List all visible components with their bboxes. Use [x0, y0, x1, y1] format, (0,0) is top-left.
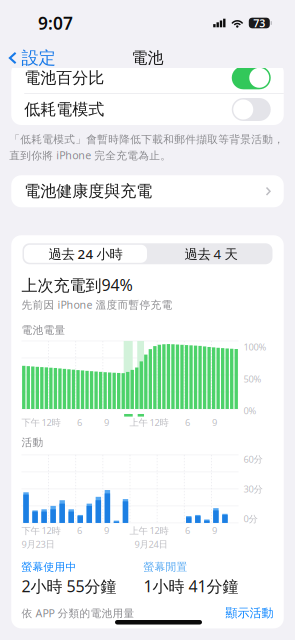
- staticText: 6: [77, 416, 82, 428]
- staticText: 0分: [243, 512, 257, 525]
- button[interactable]: 過去 4 天: [151, 245, 271, 263]
- staticText: 顯示活動: [225, 606, 273, 620]
- button[interactable]: 過去 24 小時: [24, 245, 147, 263]
- staticText: 電池電量: [21, 324, 65, 337]
- staticText: 9: [104, 416, 109, 428]
- staticText: 電池百分比: [24, 68, 104, 88]
- staticText: 9: [212, 416, 217, 428]
- staticText: 2小時 55分鐘: [21, 575, 116, 597]
- staticText: 9月24日: [134, 538, 167, 550]
- staticText: 活動: [21, 436, 43, 449]
- staticText: 先前因 iPhone 溫度而暫停充電: [21, 297, 172, 312]
- staticText: 9:07: [38, 11, 73, 34]
- staticText: 1小時 41分鐘: [143, 575, 238, 597]
- staticText: 電池: [131, 48, 163, 68]
- staticText: 50%: [243, 373, 261, 385]
- staticText: 設定: [21, 47, 55, 69]
- button[interactable]: 電池百分比: [11, 62, 284, 93]
- staticText: 上午 12時: [129, 416, 168, 428]
- button[interactable]: 設定: [0, 45, 64, 71]
- staticText: 9月23日: [21, 538, 54, 550]
- staticText: 60分: [243, 453, 262, 465]
- staticText: 6: [185, 416, 190, 428]
- staticText: 電池健康度與充電: [24, 181, 152, 201]
- staticText: 0%: [243, 404, 256, 417]
- staticText: 過去 4 天: [184, 245, 237, 263]
- staticText: 6: [185, 524, 190, 537]
- staticText: 100%: [243, 341, 266, 353]
- staticText: 下午 12時: [21, 416, 60, 428]
- staticText: 下午 12時: [21, 524, 60, 537]
- staticText: 低耗電模式: [24, 100, 104, 119]
- staticText: 過去 24 小時: [48, 245, 122, 263]
- staticText: 73: [253, 16, 265, 30]
- staticText: 9: [212, 524, 217, 537]
- staticText: 30分: [243, 483, 262, 495]
- staticText: 6: [77, 524, 82, 537]
- staticText: 螢幕使用中: [21, 560, 76, 573]
- staticText: 「低耗電模式」會暫時降低下載和郵件擷取等背景活動，: [9, 133, 284, 146]
- staticText: 上次充電到94%: [21, 274, 132, 295]
- staticText: 直到你將 iPhone 完全充電為止。: [9, 148, 171, 162]
- staticText: 依 APP 分類的電池用量: [21, 606, 134, 620]
- button[interactable]: 顯示活動: [225, 606, 273, 620]
- staticText: 上午 12時: [129, 524, 168, 537]
- button[interactable]: 電池健康度與充電: [11, 175, 284, 207]
- button[interactable]: 低耗電模式: [11, 94, 284, 125]
- staticText: 9: [104, 524, 109, 537]
- staticText: 螢幕閒置: [143, 560, 187, 573]
